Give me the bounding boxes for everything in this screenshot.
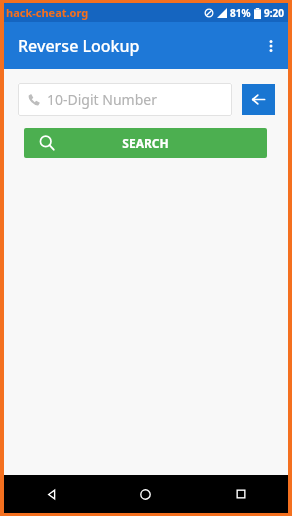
staticText: hack-cheat.org: [6, 5, 89, 20]
staticText: SEARCH: [122, 135, 169, 151]
button[interactable]: SEARCH: [24, 128, 267, 158]
button[interactable]: Home: [98, 475, 193, 513]
button[interactable]: Back: [4, 475, 98, 513]
button[interactable]: Recent apps: [193, 475, 288, 513]
staticText: 10-Digit Number: [47, 90, 157, 109]
staticText: Reverse Lookup: [18, 35, 140, 57]
button[interactable]: More options: [254, 22, 288, 69]
staticText: 9:20: [264, 6, 284, 20]
button[interactable]: 10-Digit Number: [18, 83, 232, 116]
button[interactable]: Back: [242, 84, 275, 115]
staticText: 81%: [230, 6, 251, 20]
